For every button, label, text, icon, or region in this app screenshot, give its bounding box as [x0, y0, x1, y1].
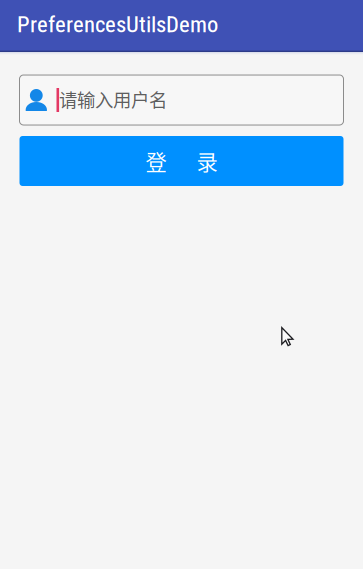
button[interactable]: 请输入用户名 [19, 75, 343, 125]
staticText: PreferencesUtilsDemo [17, 11, 218, 38]
staticText: 登 录 [145, 146, 217, 176]
staticText: 请输入用户名 [59, 86, 167, 112]
button[interactable]: 登 录 [19, 136, 343, 186]
